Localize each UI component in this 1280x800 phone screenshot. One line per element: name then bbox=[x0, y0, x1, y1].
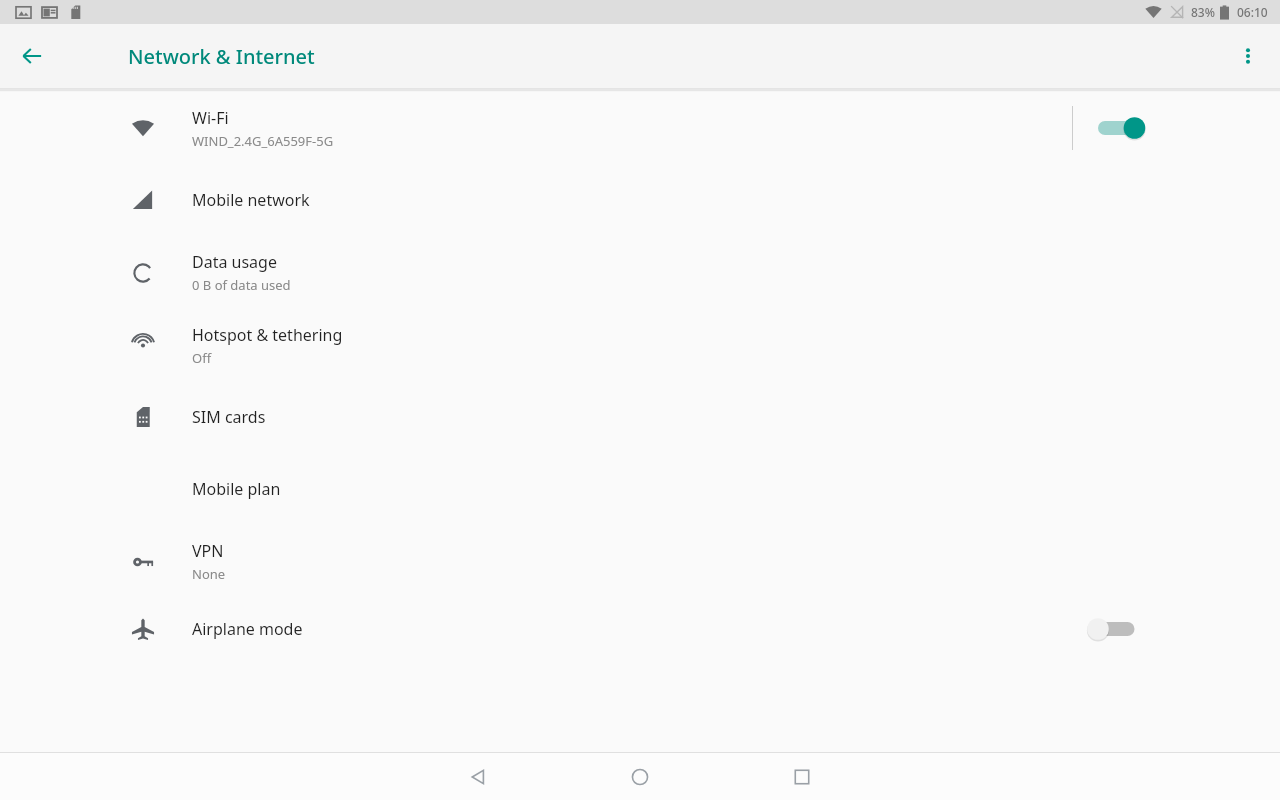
staticText: Data usage bbox=[192, 251, 277, 273]
button[interactable]: Mobile plan bbox=[0, 453, 1280, 525]
button[interactable]: Airplane mode bbox=[0, 597, 1280, 661]
staticText: Network & Internet bbox=[128, 43, 315, 70]
button[interactable]: Wi-Fi bbox=[0, 92, 1280, 164]
button[interactable]: Mobile network bbox=[0, 164, 1280, 236]
staticText: None bbox=[192, 565, 226, 583]
button[interactable]: More options bbox=[1224, 32, 1272, 80]
staticText: SIM cards bbox=[192, 406, 266, 428]
staticText: WIND_2.4G_6A559F-5G bbox=[192, 132, 334, 150]
button[interactable]: SIM cards bbox=[0, 381, 1280, 453]
button[interactable]: VPN bbox=[0, 525, 1280, 597]
staticText: Mobile network bbox=[192, 189, 310, 211]
button[interactable]: Toggle on bbox=[1092, 104, 1152, 152]
staticText: Mobile plan bbox=[192, 478, 281, 500]
button[interactable]: Home bbox=[616, 753, 664, 800]
staticText: Off bbox=[192, 349, 212, 367]
staticText: VPN bbox=[192, 540, 224, 562]
button[interactable]: Hotspot & tethering bbox=[0, 309, 1280, 381]
button[interactable]: Recent apps bbox=[778, 753, 826, 800]
staticText: 06:10 bbox=[1237, 4, 1268, 20]
staticText: Airplane mode bbox=[192, 618, 303, 640]
staticText: 0 B of data used bbox=[192, 276, 291, 294]
staticText: 83% bbox=[1191, 4, 1215, 20]
staticText: Wi-Fi bbox=[192, 107, 229, 129]
button[interactable]: Data usage bbox=[0, 236, 1280, 309]
button[interactable]: Toggle off bbox=[1092, 605, 1152, 653]
button[interactable]: Back bbox=[8, 32, 56, 80]
button[interactable]: Back bbox=[454, 753, 502, 800]
staticText: Hotspot & tethering bbox=[192, 324, 343, 346]
